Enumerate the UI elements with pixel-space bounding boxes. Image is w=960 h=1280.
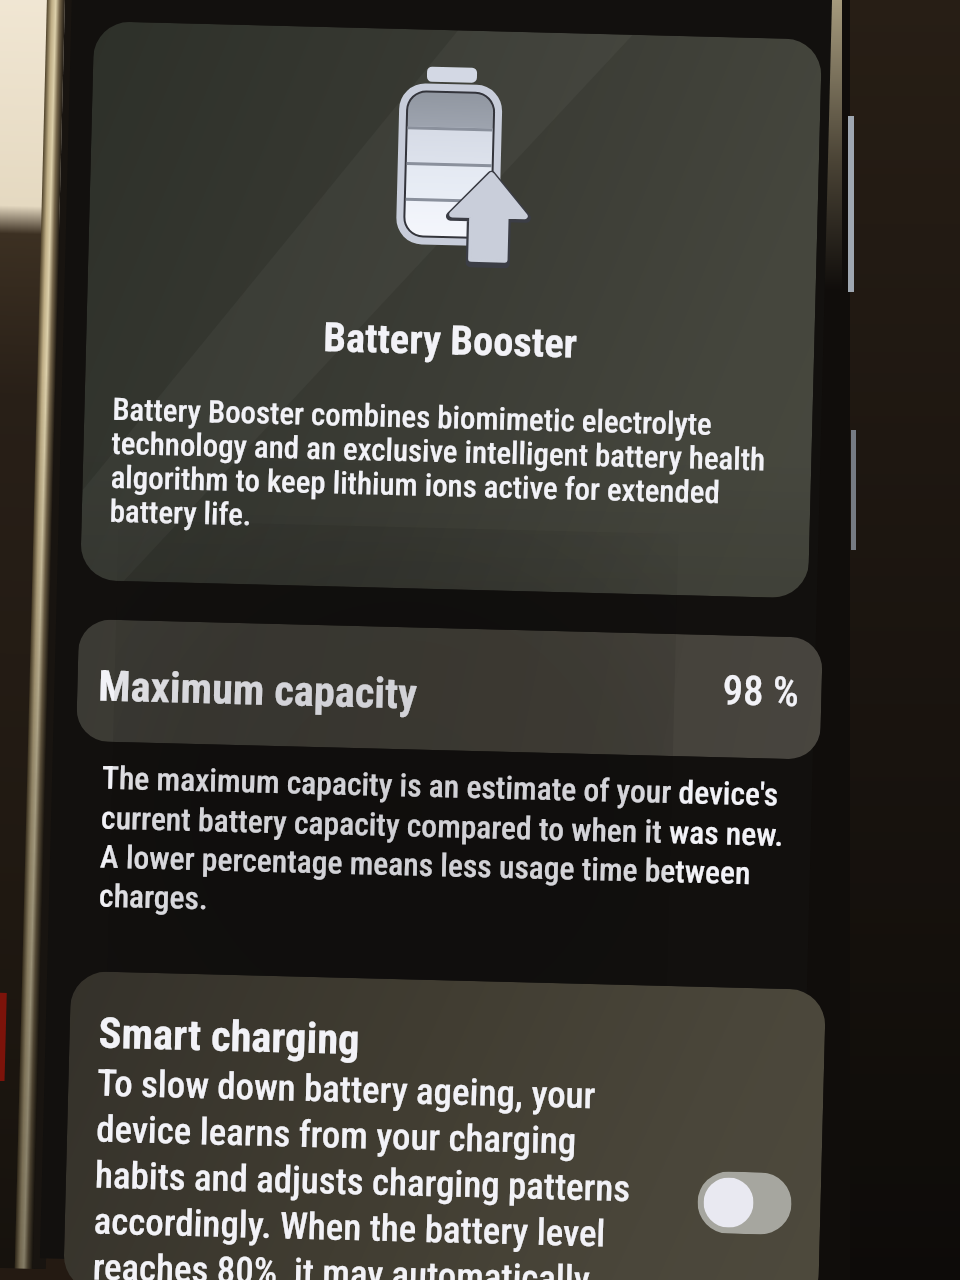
button[interactable]: Maximum capacity	[76, 619, 823, 760]
staticText: Battery Booster	[323, 313, 578, 366]
staticText: Battery Booster combines biomimetic elec…	[109, 391, 791, 547]
staticText: To slow down battery ageing, your device…	[92, 1062, 643, 1280]
button[interactable]: Smart charging toggle	[697, 1171, 792, 1235]
staticText: 98 %	[722, 666, 800, 716]
staticText: Maximum capacity	[98, 661, 418, 720]
staticText: Smart charging	[98, 1009, 360, 1065]
staticText: The maximum capacity is an estimate of y…	[99, 760, 802, 932]
